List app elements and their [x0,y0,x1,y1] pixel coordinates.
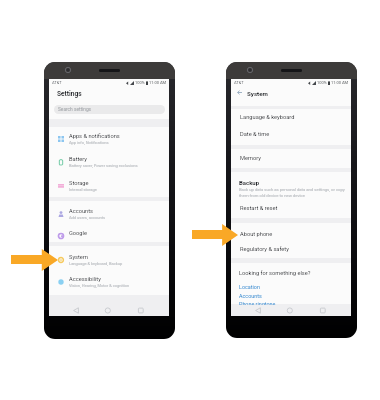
button[interactable]: Regulatory & safety [231,246,351,260]
staticText: 11:00 AM [331,80,349,85]
button[interactable]: Storage [49,180,169,198]
staticText: Language & keyboard [240,114,295,121]
staticText: System [247,90,268,97]
button[interactable]: Accounts [49,208,169,226]
staticText: Memory [240,155,261,162]
button[interactable]: Date & time [231,131,351,145]
staticText: Internal storage [69,187,97,192]
staticText: Apps & notifications [69,133,120,140]
staticText: Storage [69,180,89,187]
button[interactable]: Accounts [239,293,262,299]
staticText: Back up data such as personal data and s… [239,187,346,198]
staticText: System [69,254,88,261]
button[interactable]: Battery [49,156,169,174]
button[interactable]: Backup [231,179,351,198]
staticText: Looking for something else? [239,270,311,277]
staticText: Accounts [69,208,93,215]
staticText: Battery [69,156,88,163]
button[interactable]: Phone ringtone [239,301,276,307]
staticText: About phone [240,231,273,238]
button[interactable]: Apps & notifications [49,133,169,151]
button[interactable]: Accessibility [49,276,169,294]
staticText: AT&T [234,80,244,85]
staticText: Vision, Hearing, Motor & cognition [69,283,130,288]
staticText: Google [69,230,87,237]
button[interactable]: Memory [231,155,351,169]
staticText: Battery saver, Power saving exclusions [69,163,138,168]
staticText: Language & keyboard, Backup [69,261,123,266]
staticText: 100% [135,80,145,85]
staticText: Add users, accounts [69,215,106,220]
button[interactable]: About phone [231,231,351,245]
staticText: AT&T [52,80,62,85]
button[interactable]: Location [239,284,260,290]
button[interactable]: Language & keyboard [231,114,351,128]
button[interactable]: Back [235,88,243,96]
button[interactable]: Restart & reset [231,205,351,219]
staticText: Accessibility [69,276,101,283]
button[interactable]: System [49,254,169,272]
button[interactable]: Search settings [54,105,165,114]
staticText: Restart & reset [240,205,278,212]
staticText: Date & time [240,131,270,138]
button[interactable]: Google [49,230,169,244]
staticText: 11:00 AM [149,80,167,85]
staticText: Regulatory & safety [240,246,289,253]
staticText: App info, Notifications [69,140,109,145]
staticText: Settings [57,90,82,98]
staticText: 100% [317,80,327,85]
staticText: Backup [239,179,260,186]
staticText: Search settings [58,107,92,113]
